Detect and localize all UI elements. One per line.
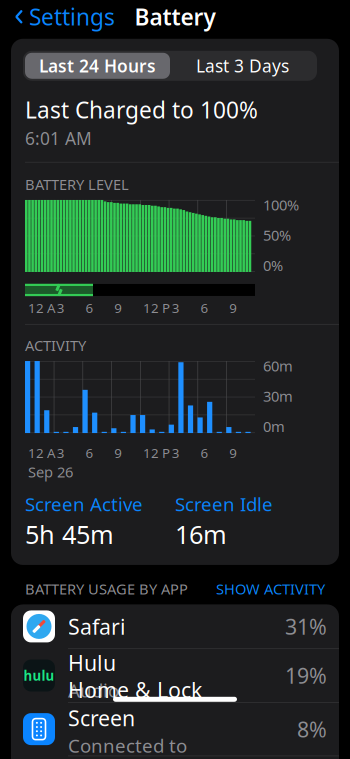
- staticText: Sep 26: [28, 462, 73, 481]
- staticText: 6:01 AM: [25, 127, 92, 150]
- staticText: Last 3 Days: [196, 54, 289, 77]
- staticText: 31%: [285, 612, 327, 641]
- staticText: 100%: [263, 195, 299, 214]
- staticText: Screen Active: [25, 491, 143, 516]
- staticText: Last 24 Hours: [39, 54, 156, 77]
- staticText: 5h 45m: [25, 517, 114, 551]
- staticText: Battery: [134, 2, 215, 32]
- staticText: Hulu: [68, 648, 116, 677]
- staticText: 3: [172, 444, 180, 462]
- button[interactable]: hulu: [11, 649, 339, 703]
- staticText: Home & Lock Screen: [68, 675, 202, 732]
- staticText: 12 P: [143, 299, 170, 317]
- staticText: 50%: [263, 225, 291, 245]
- staticText: 3: [57, 299, 65, 317]
- staticText: 16m: [175, 517, 227, 551]
- staticText: 12 A: [28, 444, 56, 462]
- button[interactable]: Settings: [4, 0, 125, 38]
- staticText: BATTERY LEVEL: [25, 174, 129, 194]
- staticText: 19%: [285, 661, 327, 690]
- staticText: 6: [200, 299, 208, 317]
- staticText: 12 A: [28, 299, 56, 317]
- button[interactable]: Safari: [11, 604, 339, 649]
- staticText: 0%: [263, 255, 283, 275]
- staticText: SHOW ACTIVITY: [216, 579, 325, 598]
- button[interactable]: SHOW ACTIVITY: [216, 579, 325, 598]
- staticText: 9: [114, 444, 122, 462]
- staticText: 6: [85, 299, 93, 317]
- staticText: Screen Idle: [175, 491, 273, 516]
- button[interactable]: Reddit: [11, 756, 339, 759]
- button[interactable]: Home & Lock Screen: [11, 703, 339, 756]
- staticText: 0m: [263, 417, 285, 436]
- staticText: 9: [229, 299, 237, 317]
- staticText: Audio: [68, 678, 119, 703]
- staticText: 3: [172, 299, 180, 317]
- staticText: 8%: [297, 715, 327, 743]
- staticText: BATTERY USAGE BY APP: [25, 579, 188, 598]
- staticText: 12 P: [143, 444, 170, 462]
- button[interactable]: Last 3 Days: [170, 53, 315, 79]
- staticText: Last Charged to 100%: [25, 95, 258, 125]
- staticText: 60m: [263, 356, 293, 375]
- staticText: 9: [229, 444, 237, 462]
- staticText: 6: [85, 444, 93, 462]
- staticText: ACTIVITY: [25, 336, 86, 355]
- staticText: Settings: [29, 2, 115, 32]
- staticText: Safari: [68, 612, 126, 641]
- staticText: 6: [200, 444, 208, 462]
- staticText: Connected to Charger: [68, 733, 187, 759]
- button[interactable]: Last 24 Hours: [25, 53, 170, 79]
- staticText: hulu: [23, 667, 54, 684]
- staticText: 3: [57, 444, 65, 462]
- staticText: 9: [114, 299, 122, 317]
- staticText: 30m: [263, 386, 293, 406]
